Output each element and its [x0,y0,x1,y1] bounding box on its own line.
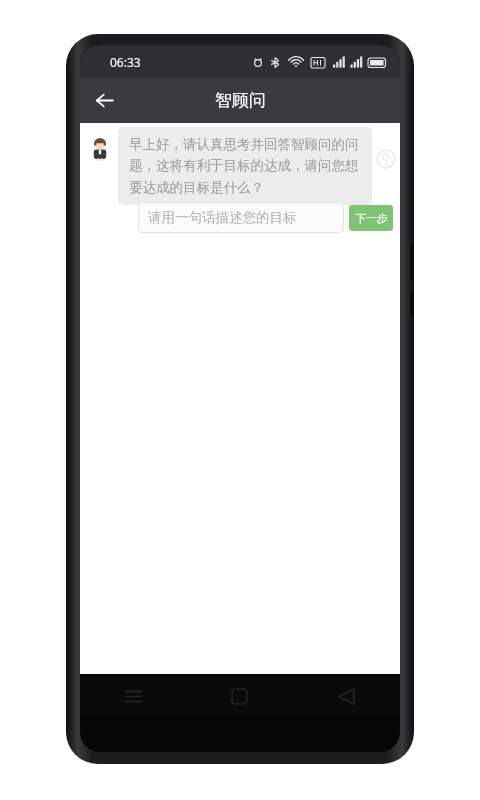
staticText: 请用一句话描述您的目标 [148,209,297,226]
staticText: 06:33 [110,54,141,70]
staticText: 下一步 [355,211,388,225]
button[interactable]: Help [376,149,396,169]
button[interactable]: Home [186,676,293,716]
button[interactable]: Back [80,78,128,123]
button[interactable]: 下一步 [349,205,393,231]
button[interactable]: 请用一句话描述您的目标 [138,202,344,233]
staticText: 智顾问 [215,90,266,111]
button[interactable]: 早上好，请认真思考并回答智顾问的问题，这将有利于目标的达成，请问您想要达成的目标… [118,127,372,205]
staticText: 早上好，请认真思考并回答智顾问的问题，这将有利于目标的达成，请问您想要达成的目标… [129,136,361,196]
button[interactable]: Back [293,676,400,716]
button[interactable]: Recents [80,676,186,716]
